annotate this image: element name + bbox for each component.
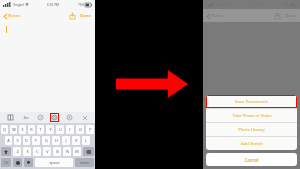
button[interactable]: A bbox=[5, 136, 12, 145]
button[interactable]: P bbox=[86, 125, 94, 134]
staticText: V bbox=[46, 149, 49, 154]
button[interactable]: K bbox=[72, 136, 80, 145]
staticText: L bbox=[85, 138, 87, 143]
button[interactable]: Checkmark bbox=[36, 113, 45, 122]
staticText: J bbox=[65, 138, 67, 143]
button[interactable]: Photo Library bbox=[206, 123, 297, 136]
staticText: M bbox=[75, 149, 79, 154]
button[interactable]: X bbox=[23, 147, 31, 156]
button[interactable]: Add Sketch bbox=[206, 137, 297, 150]
staticText: H bbox=[55, 138, 58, 143]
button[interactable]: H bbox=[52, 136, 60, 145]
button[interactable]: M bbox=[73, 147, 81, 156]
staticText: Photo Library bbox=[238, 127, 265, 133]
button[interactable]: S bbox=[14, 136, 21, 145]
staticText: Y bbox=[49, 127, 52, 132]
button[interactable]: E bbox=[19, 125, 26, 134]
button[interactable]: O bbox=[76, 125, 84, 134]
staticText: D bbox=[25, 138, 28, 143]
button[interactable]: Y bbox=[46, 125, 54, 134]
button[interactable]: Done bbox=[284, 13, 297, 19]
staticText: Take Photo or Video bbox=[232, 113, 272, 119]
button[interactable]: I bbox=[66, 125, 74, 134]
staticText: Done bbox=[80, 13, 91, 19]
staticText: X bbox=[26, 149, 29, 154]
staticText: W bbox=[12, 127, 16, 132]
staticText: 123 bbox=[3, 161, 9, 165]
button[interactable]: Scan Documents bbox=[206, 95, 297, 108]
button[interactable]: V bbox=[43, 147, 51, 156]
button[interactable]: Close bbox=[80, 113, 89, 122]
button[interactable]: N bbox=[63, 147, 71, 156]
button[interactable]: Take Photo or Video bbox=[206, 109, 297, 122]
staticText: R bbox=[30, 127, 33, 132]
button[interactable]: B bbox=[53, 147, 61, 156]
staticText: B bbox=[56, 149, 59, 154]
button[interactable]: Notes bbox=[206, 13, 224, 19]
button[interactable]: Camera bbox=[50, 113, 59, 122]
button[interactable]: Format bbox=[21, 113, 30, 122]
staticText: K bbox=[75, 138, 78, 143]
button[interactable]: Numbers bbox=[1, 158, 11, 167]
button[interactable]: Draw bbox=[65, 113, 74, 122]
staticText: E bbox=[21, 127, 24, 132]
staticText: Aa bbox=[23, 115, 29, 121]
staticText: Q bbox=[3, 127, 6, 132]
staticText: Add Sketch bbox=[241, 141, 263, 147]
button[interactable]: Share bbox=[68, 11, 77, 20]
staticText: Scan Documents bbox=[235, 99, 268, 105]
staticText: return bbox=[80, 161, 89, 165]
staticText: N bbox=[66, 149, 69, 154]
button[interactable]: C bbox=[33, 147, 41, 156]
button[interactable]: space bbox=[35, 158, 73, 167]
button[interactable]: L bbox=[82, 136, 90, 145]
staticText: 76% bbox=[78, 3, 84, 7]
staticText: Notes bbox=[211, 13, 223, 19]
staticText: Done bbox=[285, 13, 296, 19]
staticText: U bbox=[59, 127, 62, 132]
button[interactable]: Share bbox=[273, 11, 282, 20]
button[interactable]: Dictation bbox=[24, 158, 33, 167]
button[interactable]: Return bbox=[75, 158, 94, 167]
button[interactable]: Emoji bbox=[13, 158, 22, 167]
button[interactable]: D bbox=[23, 136, 30, 145]
button[interactable]: F bbox=[32, 136, 40, 145]
button[interactable]: U bbox=[56, 125, 64, 134]
staticText: space bbox=[49, 160, 60, 165]
staticText: O bbox=[79, 127, 82, 132]
staticText: T bbox=[39, 127, 42, 132]
button[interactable]: Checklist bbox=[6, 113, 15, 122]
staticText: Singtel bbox=[13, 3, 24, 7]
button[interactable]: Q bbox=[1, 125, 8, 134]
button[interactable]: Backspace bbox=[83, 147, 94, 156]
button[interactable]: R bbox=[28, 125, 35, 134]
staticText: C bbox=[36, 149, 39, 154]
button[interactable]: Notes bbox=[3, 13, 21, 19]
staticText: 6:52 PM bbox=[47, 3, 59, 7]
staticText: P bbox=[89, 127, 92, 132]
staticText: Cancel bbox=[244, 157, 259, 163]
staticText: G bbox=[45, 138, 48, 143]
staticText: Z bbox=[16, 149, 19, 154]
staticText: S bbox=[16, 138, 19, 143]
button[interactable]: Shift bbox=[1, 147, 11, 156]
staticText: F bbox=[35, 138, 37, 143]
button[interactable]: Z bbox=[13, 147, 21, 156]
button[interactable]: T bbox=[37, 125, 44, 134]
staticText: Notes bbox=[8, 13, 20, 19]
staticText: A bbox=[7, 138, 10, 143]
staticText: I bbox=[69, 127, 71, 132]
button[interactable]: Cancel bbox=[206, 153, 297, 166]
button[interactable]: Done bbox=[79, 13, 92, 19]
button[interactable]: G bbox=[42, 136, 50, 145]
button[interactable]: W bbox=[10, 125, 17, 134]
button[interactable]: J bbox=[62, 136, 70, 145]
